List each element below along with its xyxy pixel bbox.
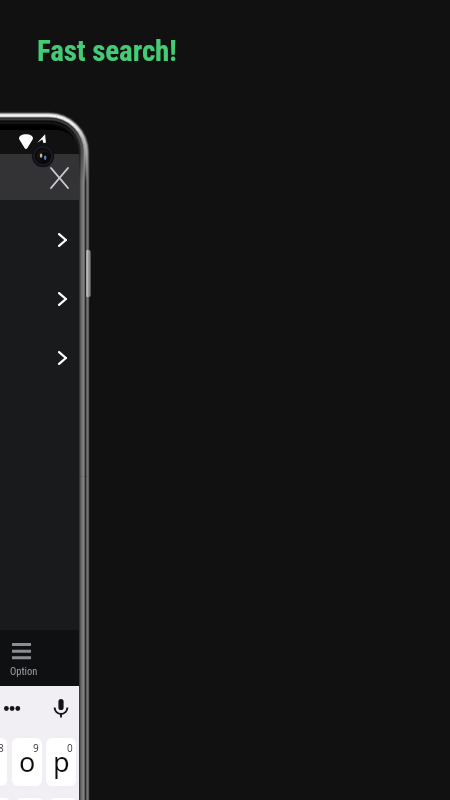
- staticText: o: [19, 743, 36, 780]
- staticText: 8: [0, 741, 4, 755]
- button[interactable]: [0, 269, 79, 328]
- button[interactable]: Close: [0, 154, 79, 200]
- button[interactable]: i: [0, 738, 7, 786]
- button[interactable]: o: [12, 738, 42, 786]
- button[interactable]: [0, 210, 79, 269]
- staticText: 0: [67, 741, 73, 755]
- button[interactable]: [16, 798, 44, 800]
- button[interactable]: Voice input: [53, 697, 70, 721]
- button[interactable]: Close: [43, 162, 75, 194]
- button[interactable]: p: [46, 738, 76, 786]
- staticText: 9: [33, 741, 39, 755]
- staticText: p: [53, 743, 70, 780]
- button[interactable]: Option: [1, 630, 45, 686]
- button[interactable]: More options: [3, 704, 23, 714]
- staticText: Option: [10, 665, 38, 677]
- button[interactable]: [0, 798, 11, 800]
- staticText: Fast search!: [37, 34, 177, 68]
- button[interactable]: [49, 798, 77, 800]
- button[interactable]: [0, 328, 79, 387]
